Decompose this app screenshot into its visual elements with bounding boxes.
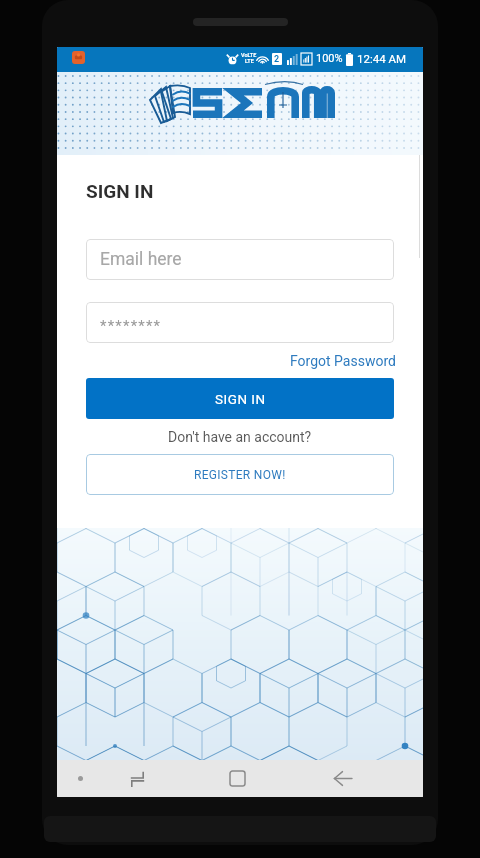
- staticText: LTE: [245, 58, 254, 64]
- staticText: ********: [100, 317, 162, 335]
- button[interactable]: Home: [221, 762, 254, 795]
- staticText: SIGN IN: [86, 180, 154, 202]
- button[interactable]: Forgot Password: [290, 353, 396, 369]
- button[interactable]: REGISTER NOW!: [86, 454, 394, 495]
- staticText: Don't have an account?: [168, 429, 312, 445]
- button[interactable]: Recent apps: [121, 762, 154, 795]
- staticText: 100%: [316, 52, 343, 65]
- button[interactable]: SIGN IN: [86, 378, 394, 419]
- staticText: VoLTE: [241, 52, 257, 58]
- button[interactable]: Back: [326, 762, 359, 795]
- staticText: REGISTER NOW!: [194, 468, 286, 482]
- staticText: Forgot Password: [290, 353, 396, 369]
- button[interactable]: Email here: [86, 239, 394, 280]
- button[interactable]: Assistant: [64, 762, 97, 795]
- staticText: 12:44 AM: [357, 52, 407, 65]
- staticText: Email here: [100, 249, 182, 270]
- button[interactable]: ********: [86, 302, 394, 343]
- staticText: SIGN IN: [215, 391, 266, 407]
- staticText: 2: [274, 54, 280, 65]
